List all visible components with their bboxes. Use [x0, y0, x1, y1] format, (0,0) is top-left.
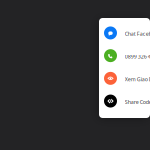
staticText: 0899 326 458 — [125, 53, 150, 60]
button[interactable]: 0899 326 458 — [99, 44, 150, 67]
staticText: Share Code — [125, 98, 150, 105]
staticText: Xem Giao Dich — [125, 76, 150, 83]
button[interactable]: Share Code — [99, 90, 150, 112]
button[interactable]: Xem Giao Dich — [99, 67, 150, 90]
button[interactable]: Chat Facebook — [99, 22, 150, 44]
staticText: Chat Facebook — [125, 30, 150, 37]
